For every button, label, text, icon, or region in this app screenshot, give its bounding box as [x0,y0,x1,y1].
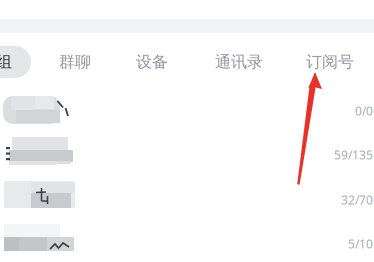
staticText: 通讯录 [215,52,263,72]
staticText: 设备 [136,52,168,72]
button[interactable]: 通讯录 [0,0,68,32]
staticText: 59/135 [334,147,373,163]
staticText: 5/10 [348,236,373,252]
button[interactable]: 分组 [0,0,70,32]
button[interactable]: 订阅号 [0,0,68,32]
staticText: 订阅号 [306,52,354,72]
staticText: 群聊 [59,52,91,72]
button[interactable]: 设备 [0,0,52,32]
button[interactable]: 群聊 [0,0,52,32]
staticText: 0/0 [355,103,373,119]
staticText: 分组 [0,52,12,72]
staticText: 32/70 [341,192,373,208]
